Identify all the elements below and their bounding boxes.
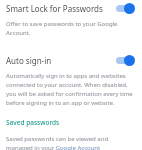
button[interactable]: Auto sign-in <box>0 53 142 67</box>
staticText: Smart Lock for Passwords <box>6 3 114 14</box>
staticText: Automatically sign in to apps and websit… <box>6 72 136 107</box>
button[interactable]: Saved passwords can be viewed and manage… <box>0 135 142 150</box>
staticText: Saved passwords <box>6 118 60 127</box>
button[interactable]: Toggle Smart Lock for Passwords <box>114 1 136 15</box>
staticText: Offer to save passwords to your Google A… <box>6 20 136 37</box>
button[interactable]: Toggle Auto sign-in <box>114 53 136 67</box>
button[interactable]: Smart Lock for Passwords <box>0 1 142 15</box>
staticText: Auto sign-in <box>6 55 114 66</box>
